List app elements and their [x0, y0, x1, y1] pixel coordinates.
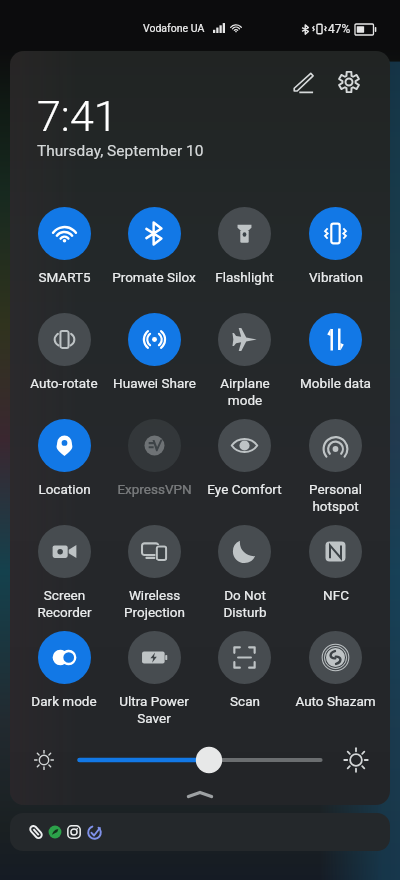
button[interactable]: Personal hotspot	[290, 419, 381, 525]
button[interactable]: ExpressVPN	[109, 419, 199, 525]
button[interactable]: Auto-rotate	[19, 313, 109, 419]
button[interactable]: Promate Silox	[109, 207, 199, 313]
staticText: Dark mode	[31, 693, 97, 709]
staticText: Auto Shazam	[295, 693, 376, 709]
staticText: Flashlight	[215, 269, 274, 285]
button[interactable]: Huawei Share	[109, 313, 199, 419]
button[interactable]: Auto Shazam	[290, 631, 381, 737]
button[interactable]: NFC	[290, 525, 381, 631]
staticText: Promate Silox	[112, 269, 196, 285]
staticText: Ultra Power Saver	[119, 693, 189, 726]
staticText: Do Not Disturb	[223, 587, 267, 620]
button[interactable]: Airplane mode	[199, 313, 290, 419]
staticText: 7:41	[37, 91, 118, 141]
staticText: SMART5	[38, 269, 91, 285]
button[interactable]: Edit	[284, 64, 320, 100]
button[interactable]: Wireless Projection	[109, 525, 199, 631]
staticText: Personal hotspot	[309, 481, 362, 514]
staticText: Vibration	[309, 269, 363, 285]
button[interactable]: Brightness	[10, 738, 390, 782]
staticText: Screen Recorder	[37, 587, 92, 620]
button[interactable]: Eye Comfort	[199, 419, 290, 525]
staticText: Scan	[230, 693, 260, 709]
button[interactable]: Mobile data	[290, 313, 381, 419]
staticText: Vodafone UA	[143, 22, 205, 34]
staticText: Eye Comfort	[207, 481, 282, 497]
button[interactable]: Settings	[331, 64, 367, 100]
staticText: 47%	[328, 22, 351, 36]
button[interactable]: SMART5	[19, 207, 109, 313]
staticText: NFC	[323, 587, 349, 603]
button[interactable]: Dark mode	[19, 631, 109, 737]
button[interactable]: Vibration	[290, 207, 381, 313]
staticText: Airplane mode	[220, 375, 270, 408]
button[interactable]: Screen Recorder	[19, 525, 109, 631]
staticText: Mobile data	[300, 375, 371, 391]
button[interactable]: Do Not Disturb	[199, 525, 290, 631]
staticText: Location	[38, 481, 91, 497]
button[interactable]: Scan	[199, 631, 290, 737]
button[interactable]: Ultra Power Saver	[109, 631, 199, 737]
staticText: Auto-rotate	[30, 375, 98, 391]
staticText: Thursday, September 10	[37, 142, 204, 160]
staticText: Huawei Share	[113, 375, 196, 391]
staticText: Wireless Projection	[124, 587, 185, 620]
button[interactable]: Flashlight	[199, 207, 290, 313]
staticText: ExpressVPN	[117, 481, 192, 497]
button[interactable]: Location	[19, 419, 109, 525]
